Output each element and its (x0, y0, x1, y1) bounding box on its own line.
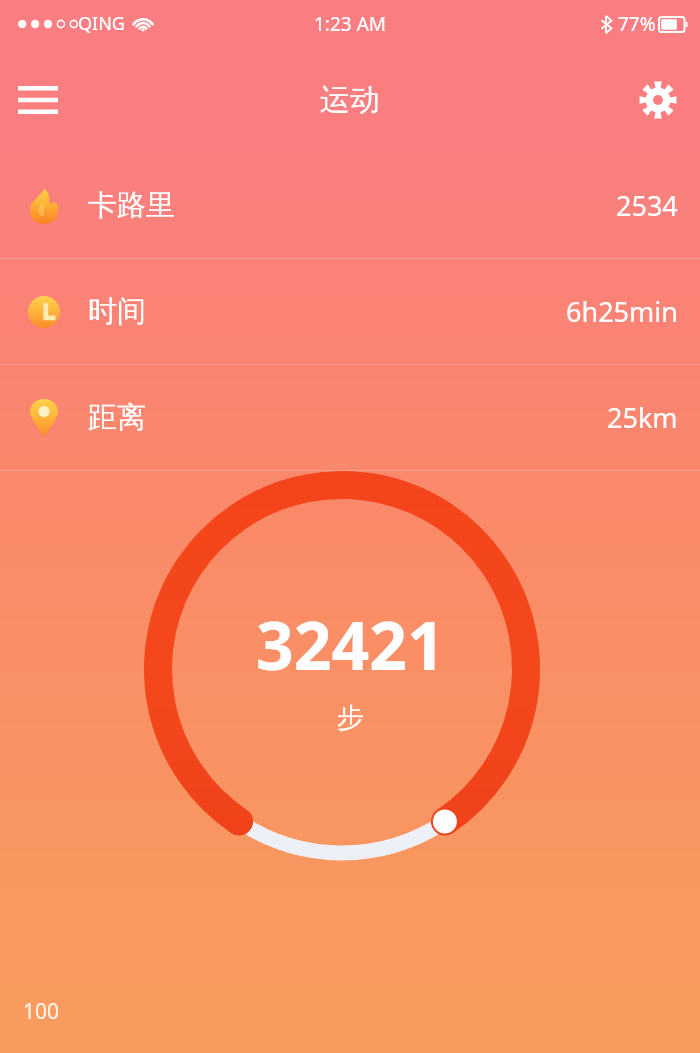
staticText: 1:23 AM (314, 11, 387, 37)
staticText: 77% (618, 11, 656, 37)
button[interactable]: 卡路里 (0, 153, 700, 258)
staticText: 2534 (616, 187, 678, 224)
button[interactable]: 时间 (0, 259, 700, 364)
button[interactable]: Settings (632, 74, 684, 126)
staticText: 距离 (88, 399, 146, 436)
staticText: 运动 (320, 81, 380, 119)
staticText: 32421 (256, 599, 445, 689)
staticText: 6h25min (566, 293, 678, 330)
button[interactable]: Menu (12, 74, 64, 126)
staticText: QING (78, 11, 125, 36)
staticText: 卡路里 (88, 187, 175, 224)
staticText: 步 (337, 701, 364, 735)
button[interactable]: 距离 (0, 365, 700, 470)
staticText: 时间 (88, 293, 146, 330)
staticText: 25km (607, 399, 678, 436)
staticText: 100 (23, 997, 60, 1026)
